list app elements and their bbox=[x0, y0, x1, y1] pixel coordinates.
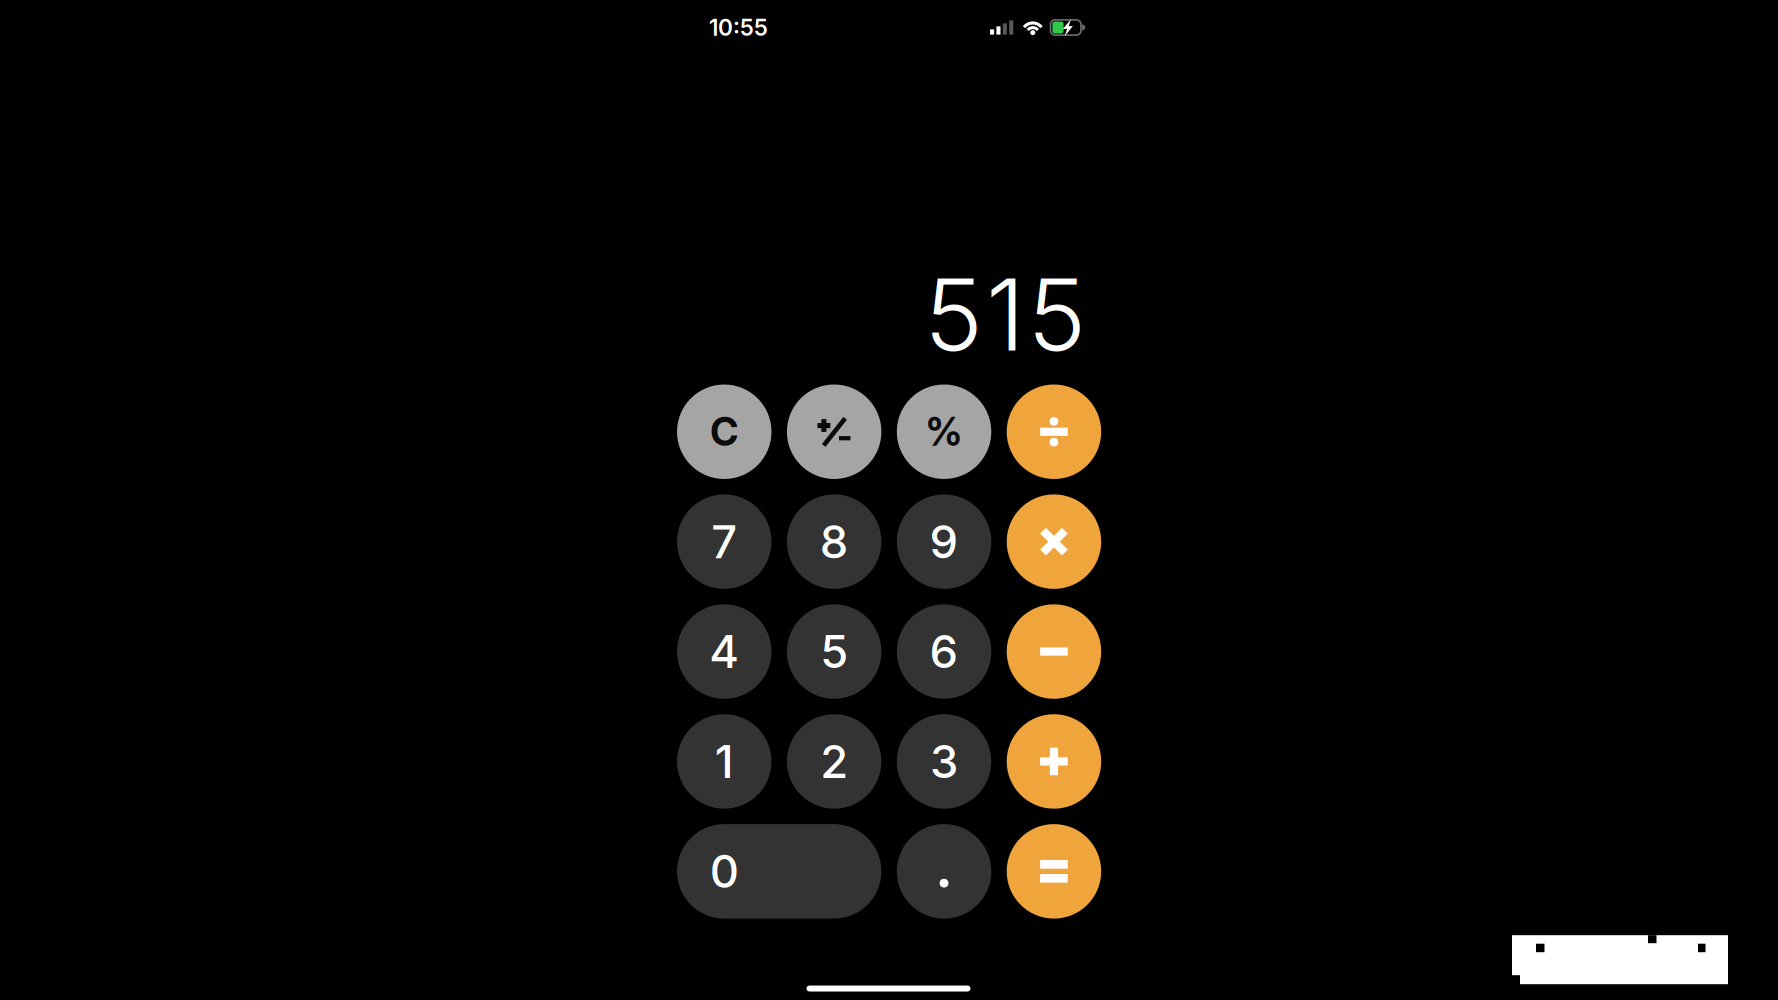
staticText: 10:55 bbox=[709, 14, 768, 41]
button[interactable]: Multiply bbox=[1007, 494, 1101, 589]
button[interactable]: 6 bbox=[897, 604, 991, 699]
button[interactable]: 3 bbox=[897, 714, 991, 809]
button[interactable]: 8 bbox=[787, 494, 881, 589]
staticText: 6 bbox=[929, 625, 958, 678]
button[interactable]: C bbox=[677, 384, 771, 479]
button[interactable]: 0 bbox=[677, 824, 881, 919]
button[interactable]: 7 bbox=[677, 494, 771, 589]
staticText: % bbox=[925, 409, 962, 454]
staticText: C bbox=[710, 409, 738, 454]
button[interactable]: Equals bbox=[1007, 824, 1101, 919]
button[interactable]: 9 bbox=[897, 494, 991, 589]
staticText: 4 bbox=[709, 625, 739, 678]
button[interactable]: Add bbox=[1007, 714, 1101, 809]
staticText: 0 bbox=[710, 845, 739, 898]
staticText: 1 bbox=[715, 735, 734, 788]
staticText: 8 bbox=[820, 515, 849, 568]
button[interactable]: 4 bbox=[677, 604, 771, 699]
button[interactable]: 2 bbox=[787, 714, 881, 809]
button[interactable]: 1 bbox=[677, 714, 771, 809]
button[interactable]: 5 bbox=[787, 604, 881, 699]
staticText: 9 bbox=[929, 515, 958, 568]
staticText: 2 bbox=[820, 735, 848, 788]
button[interactable]: Divide bbox=[1007, 384, 1101, 479]
button[interactable]: Subtract bbox=[1007, 604, 1101, 699]
staticText: 7 bbox=[711, 515, 737, 568]
staticText: 3 bbox=[930, 735, 958, 788]
button[interactable]: Decimal point bbox=[897, 824, 991, 919]
button[interactable]: Plus Minus bbox=[787, 384, 881, 479]
staticText: 5 bbox=[820, 625, 848, 678]
staticText: 515 bbox=[924, 256, 1086, 373]
button[interactable]: % bbox=[897, 384, 991, 479]
